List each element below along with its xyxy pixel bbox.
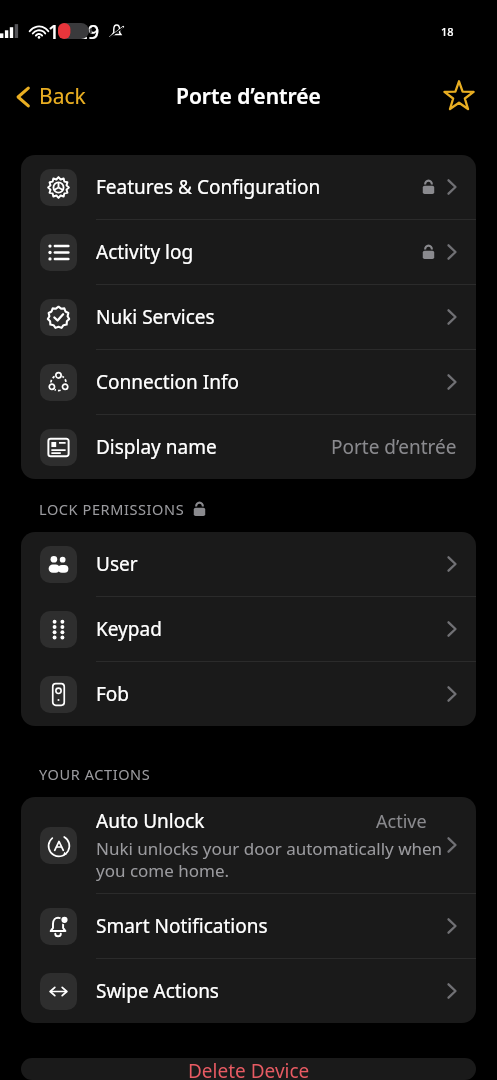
button[interactable]: Favorite — [439, 76, 479, 116]
staticText: Back — [39, 82, 86, 111]
button[interactable]: Back — [10, 76, 92, 117]
button[interactable]: Delete Device — [21, 1058, 476, 1080]
staticText: User — [96, 551, 138, 577]
staticText: Porte d’entrée — [331, 434, 457, 460]
button[interactable]: Features & Configuration — [21, 155, 476, 219]
staticText: Fob — [96, 681, 130, 707]
button[interactable]: Keypad — [21, 597, 476, 661]
staticText: Connection Info — [96, 369, 239, 395]
staticText: Nuki unlocks your door automatically whe… — [96, 837, 443, 882]
button[interactable]: Auto Unlock — [21, 797, 476, 893]
button[interactable]: Smart Notifications — [21, 894, 476, 958]
staticText: Swipe Actions — [96, 978, 219, 1004]
staticText: Keypad — [96, 616, 162, 642]
staticText: Auto Unlock — [96, 808, 205, 834]
staticText: Activity log — [96, 239, 194, 265]
button[interactable]: Fob — [21, 662, 476, 726]
staticText: Smart Notifications — [96, 913, 268, 939]
button[interactable]: Nuki Services — [21, 285, 476, 349]
staticText: Delete Device — [188, 1058, 310, 1080]
staticText: Features & Configuration — [96, 174, 321, 200]
staticText: 14:29 — [48, 18, 100, 45]
button[interactable]: Connection Info — [21, 350, 476, 414]
staticText: Active — [376, 809, 427, 834]
staticText: Nuki Services — [96, 304, 215, 330]
button[interactable]: Display name — [21, 415, 476, 479]
staticText: Display name — [96, 434, 217, 460]
button[interactable]: Activity log — [21, 220, 476, 284]
staticText: YOUR ACTIONS — [39, 764, 151, 784]
staticText: 18 — [441, 24, 454, 39]
staticText: LOCK PERMISSIONS — [39, 499, 185, 519]
staticText: Porte d’entrée — [176, 82, 321, 111]
button[interactable]: User — [21, 532, 476, 596]
button[interactable]: Swipe Actions — [21, 959, 476, 1023]
